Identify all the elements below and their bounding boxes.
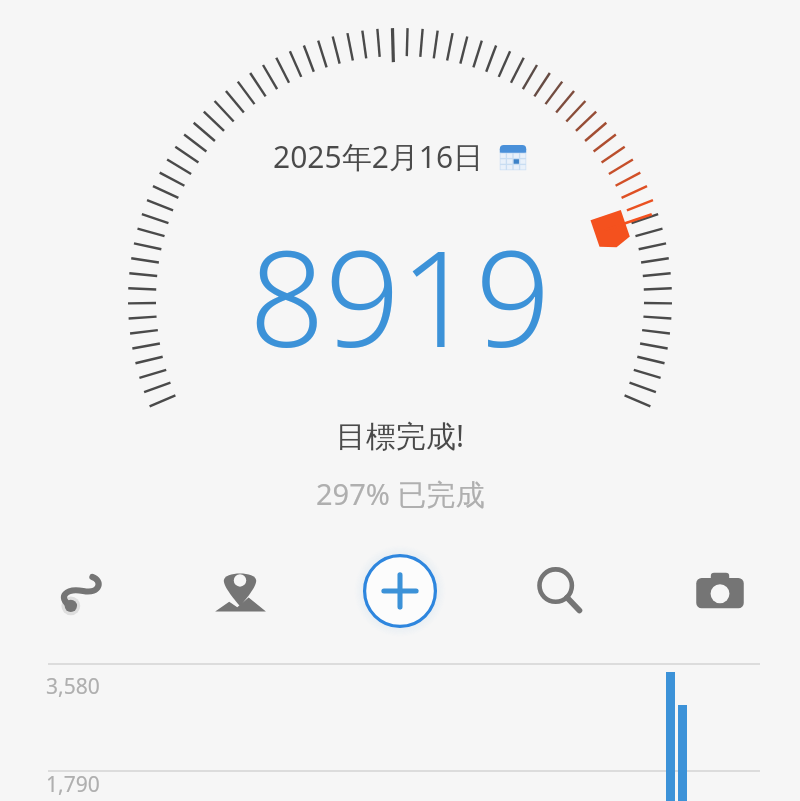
staticText: 3,580 (46, 672, 100, 701)
button[interactable]: Add (354, 545, 446, 637)
button[interactable]: Route (44, 555, 116, 627)
button[interactable]: Search (524, 555, 596, 627)
staticText: 8919 (249, 206, 551, 386)
staticText: 297% 已完成 (316, 474, 485, 514)
staticText: 1,790 (46, 770, 100, 799)
staticText: 目標完成! (336, 415, 465, 456)
button[interactable]: Camera (684, 555, 756, 627)
button[interactable]: Places (204, 555, 276, 627)
staticText: 2025年2月16日 (273, 136, 484, 177)
button[interactable]: 2025年2月16日 (265, 132, 536, 181)
